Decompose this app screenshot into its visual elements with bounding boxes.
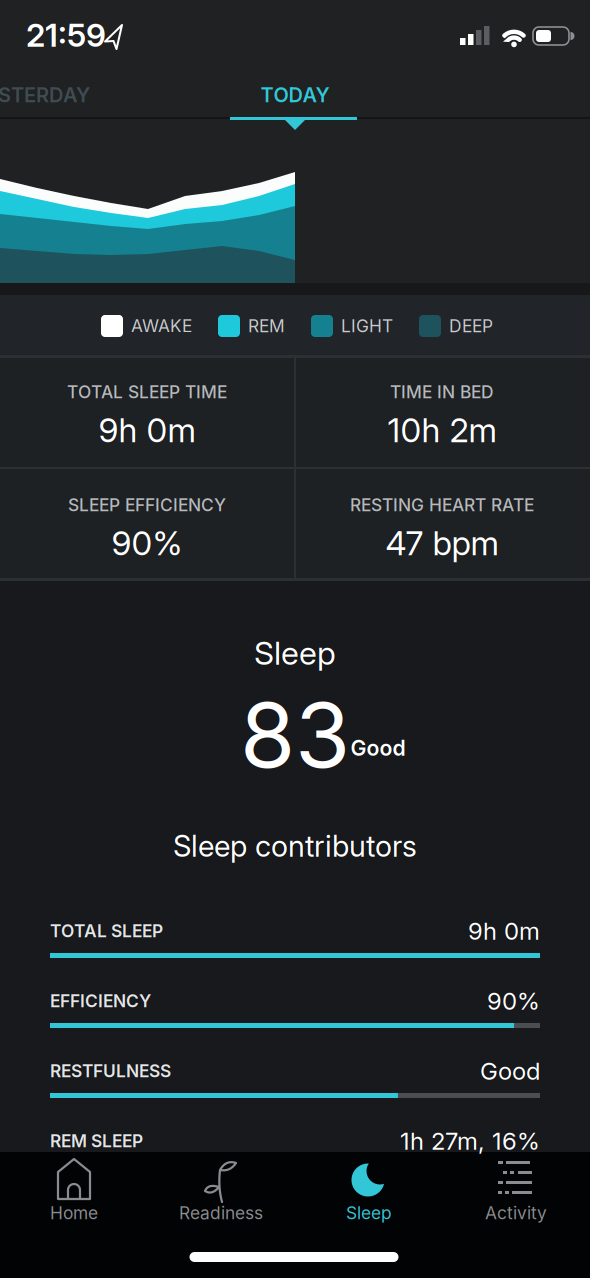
staticText: 10h 2m	[387, 410, 496, 450]
staticText: DEEP	[449, 316, 493, 336]
staticText: 1h 27m, 16%	[400, 1127, 540, 1155]
staticText: Good	[480, 1057, 540, 1085]
staticText: REM	[248, 316, 285, 336]
staticText: 90%	[111, 523, 182, 563]
staticText: Good	[350, 735, 405, 761]
button[interactable]: Home	[0, 1152, 147, 1248]
staticText: LIGHT	[341, 316, 393, 336]
staticText: TOTAL SLEEP TIME	[67, 382, 227, 402]
staticText: SLEEP EFFICIENCY	[68, 495, 226, 515]
staticText: RESTING HEART RATE	[350, 495, 534, 515]
staticText: Activity	[485, 1203, 547, 1223]
staticText: 47 bpm	[385, 523, 498, 563]
staticText: Sleep	[254, 634, 336, 672]
button[interactable]: Sleep	[295, 1152, 442, 1248]
button[interactable]: STERDAY	[0, 68, 129, 122]
staticText: Readiness	[179, 1203, 263, 1223]
staticText: Sleep contributors	[173, 829, 417, 863]
button[interactable]: TODAY	[210, 68, 380, 122]
staticText: Home	[50, 1203, 98, 1223]
button[interactable]: Activity	[442, 1152, 589, 1248]
staticText: 21:59	[26, 16, 106, 54]
staticText: 9h 0m	[98, 410, 195, 450]
staticText: TIME IN BED	[390, 382, 494, 402]
staticText: RESTFULNESS	[50, 1061, 171, 1081]
button[interactable]: Readiness	[147, 1152, 294, 1248]
staticText: STERDAY	[0, 83, 90, 107]
staticText: REM SLEEP	[50, 1131, 143, 1151]
staticText: 90%	[487, 987, 540, 1015]
staticText: 83	[240, 682, 350, 788]
staticText: Sleep	[346, 1203, 392, 1223]
staticText: 9h 0m	[468, 917, 540, 945]
staticText: AWAKE	[131, 316, 192, 336]
staticText: EFFICIENCY	[50, 991, 151, 1011]
staticText: TODAY	[260, 83, 329, 107]
staticText: TOTAL SLEEP	[50, 921, 163, 941]
